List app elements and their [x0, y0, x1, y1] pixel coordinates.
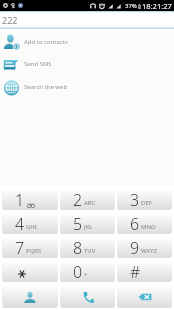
- staticText: 3: [130, 189, 140, 210]
- button[interactable]: Contacts: [2, 285, 58, 308]
- button[interactable]: 6: [117, 213, 172, 234]
- staticText: 37%: [125, 2, 137, 10]
- staticText: TUV: [84, 247, 96, 255]
- button[interactable]: 2: [60, 189, 115, 210]
- staticText: 4: [15, 213, 25, 234]
- button[interactable]: [2, 261, 58, 282]
- staticText: 0: [73, 261, 83, 282]
- staticText: JKL: [84, 223, 93, 231]
- button[interactable]: 7: [2, 237, 58, 258]
- button[interactable]: 4: [2, 213, 58, 234]
- button[interactable]: #: [117, 261, 172, 282]
- staticText: +: [84, 271, 88, 279]
- button[interactable]: Send SMS: [0, 53, 174, 75]
- staticText: 8: [73, 237, 83, 258]
- button[interactable]: 0: [60, 261, 115, 282]
- button[interactable]: 9: [117, 237, 172, 258]
- staticText: PQRS: [26, 247, 42, 255]
- button[interactable]: Add to contacts: [0, 31, 174, 53]
- button[interactable]: 5: [60, 213, 115, 234]
- staticText: GHI: [26, 223, 37, 231]
- button[interactable]: Call: [60, 285, 115, 308]
- button[interactable]: 1: [2, 189, 58, 210]
- button[interactable]: 8: [60, 237, 115, 258]
- staticText: 18:21:27: [142, 1, 172, 11]
- staticText: MNO: [141, 223, 156, 231]
- button[interactable]: Backspace: [117, 285, 172, 308]
- staticText: Send SMS: [24, 60, 52, 68]
- staticText: 1: [15, 189, 25, 210]
- staticText: 9: [130, 237, 140, 258]
- staticText: Add to contacts: [24, 38, 68, 46]
- button[interactable]: Search the web: [0, 76, 174, 98]
- staticText: 7: [15, 237, 25, 258]
- staticText: 5: [73, 213, 83, 234]
- staticText: #: [130, 261, 141, 282]
- staticText: 6: [130, 213, 140, 234]
- staticText: DEF: [141, 199, 152, 207]
- staticText: 222: [2, 14, 18, 26]
- staticText: ABC: [84, 199, 96, 207]
- staticText: 2: [73, 189, 83, 210]
- staticText: Search the web: [24, 83, 68, 91]
- staticText: WXYZ: [141, 247, 157, 255]
- button[interactable]: 3: [117, 189, 172, 210]
